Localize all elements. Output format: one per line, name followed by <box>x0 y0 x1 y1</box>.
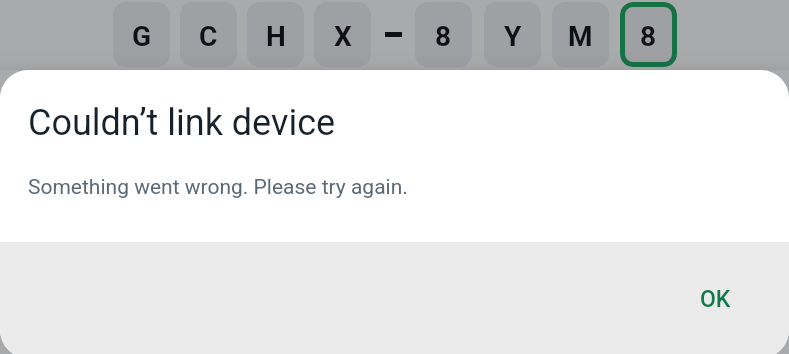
button[interactable]: 8 <box>415 2 472 67</box>
staticText: Couldn’t link device <box>28 102 336 144</box>
staticText: G <box>132 20 152 53</box>
staticText: 8 <box>640 20 657 53</box>
staticText: OK <box>700 286 731 313</box>
button[interactable]: Y <box>484 2 541 67</box>
staticText: C <box>199 20 218 53</box>
button[interactable]: OK <box>682 276 749 323</box>
button[interactable]: C <box>180 2 237 67</box>
staticText: 8 <box>435 20 452 53</box>
staticText: X <box>334 20 352 53</box>
staticText: H <box>266 20 286 53</box>
button[interactable]: G <box>113 2 170 67</box>
button[interactable]: 8 <box>620 2 677 67</box>
button[interactable]: H <box>247 2 304 67</box>
staticText: M <box>568 20 593 53</box>
staticText: Something went wrong. Please try again. <box>28 175 408 200</box>
button[interactable]: M <box>552 2 609 67</box>
staticText: Y <box>504 20 522 53</box>
button[interactable]: X <box>314 2 371 67</box>
